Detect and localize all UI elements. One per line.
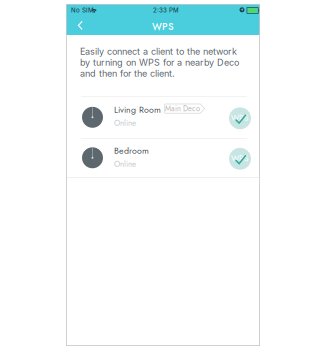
staticText: WPS xyxy=(152,19,174,34)
staticText: 2:33 PM xyxy=(153,7,179,14)
button[interactable]: Start WPS xyxy=(229,107,251,129)
staticText: Bedroom xyxy=(114,144,149,157)
button[interactable]: Bedroom xyxy=(66,139,260,177)
staticText: No SIM xyxy=(71,7,94,14)
button[interactable]: Living Room xyxy=(66,97,260,138)
staticText: Easily connect a client to the network b… xyxy=(80,46,239,79)
staticText: WPS xyxy=(231,152,249,164)
staticText: Main Deco xyxy=(165,103,200,114)
staticText: WPS xyxy=(231,112,249,124)
staticText: Living Room xyxy=(114,103,161,116)
staticText: Online xyxy=(114,158,136,170)
staticText: Online xyxy=(114,117,136,129)
button[interactable]: Back xyxy=(70,18,94,35)
button[interactable]: Start WPS xyxy=(229,148,251,170)
